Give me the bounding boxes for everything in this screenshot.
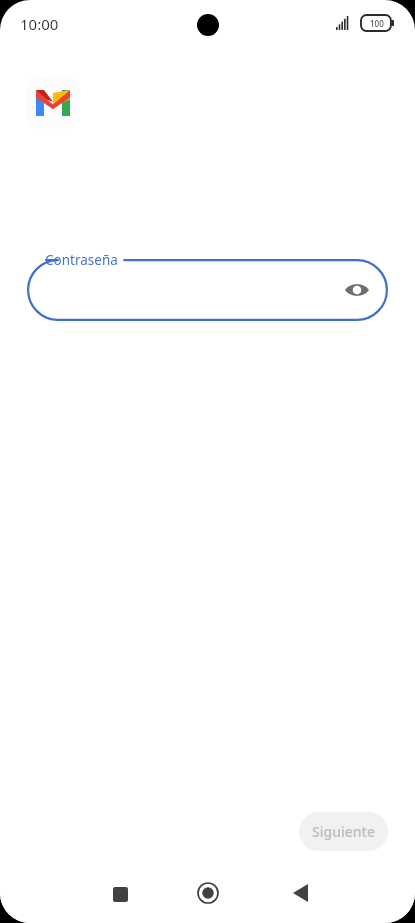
button[interactable]: Mostrar contraseña [340,273,374,307]
button[interactable] [26,76,79,129]
staticText: Siguiente [312,822,375,841]
button[interactable]: Recientes [105,879,135,909]
staticText: Contraseña [45,251,118,269]
button[interactable]: Mostrar contraseña [27,259,388,321]
button[interactable]: Inicio [192,877,224,909]
button[interactable]: Atrás [285,878,315,908]
button[interactable]: Siguiente [299,812,388,851]
staticText: 10:00 [20,14,59,34]
staticText: 100 [370,18,384,29]
